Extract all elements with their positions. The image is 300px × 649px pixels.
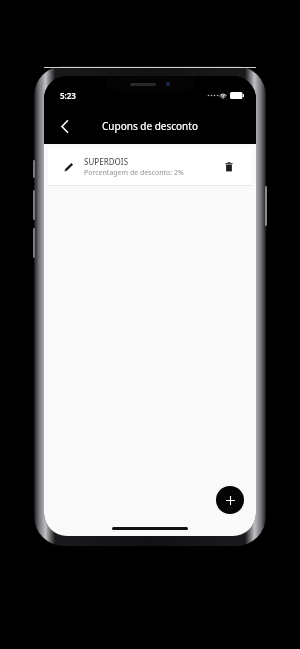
staticText: SUPERDOIS [84, 156, 129, 167]
button[interactable]: Excluir [218, 156, 240, 178]
staticText: 5:23 [60, 90, 76, 101]
button[interactable]: Editar [48, 148, 252, 185]
button[interactable]: Editar [58, 156, 80, 178]
staticText: Cupons de desconto [102, 119, 198, 133]
button[interactable]: Adicionar cupom [216, 486, 244, 514]
button[interactable]: Voltar [50, 112, 78, 140]
staticText: Porcentagem de desconto: 2% [84, 168, 184, 178]
